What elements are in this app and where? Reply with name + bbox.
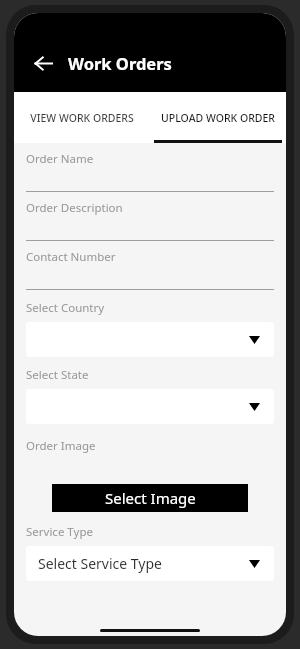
- button[interactable]: Order Description: [26, 192, 274, 241]
- staticText: UPLOAD WORK ORDER: [161, 111, 275, 125]
- staticText: Contact Number: [26, 249, 116, 265]
- staticText: Select State: [26, 367, 89, 383]
- button[interactable]: Dropdown: [26, 546, 274, 581]
- staticText: Service Type: [26, 524, 93, 540]
- staticText: Order Image: [26, 438, 96, 454]
- staticText: Select Service Type: [38, 554, 162, 573]
- staticText: VIEW WORK ORDERS: [30, 111, 134, 125]
- button[interactable]: Dropdown: [26, 322, 274, 357]
- staticText: Select Image: [105, 488, 196, 508]
- button[interactable]: Contact Number: [26, 241, 274, 290]
- staticText: Order Description: [26, 200, 123, 216]
- staticText: Select Country: [26, 300, 105, 316]
- button[interactable]: Order Name: [26, 143, 274, 192]
- button[interactable]: UPLOAD WORK ORDER: [150, 92, 286, 143]
- button[interactable]: Dropdown: [26, 389, 274, 424]
- button[interactable]: Back: [26, 46, 60, 80]
- button[interactable]: VIEW WORK ORDERS: [14, 92, 150, 143]
- button[interactable]: Select Image: [52, 484, 248, 512]
- staticText: Order Name: [26, 151, 94, 167]
- staticText: Work Orders: [68, 52, 172, 74]
